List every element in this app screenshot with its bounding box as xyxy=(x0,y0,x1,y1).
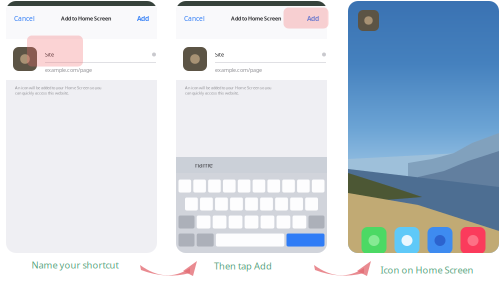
button[interactable]: Messages xyxy=(394,227,419,254)
button[interactable]: Web clip app icon xyxy=(358,10,379,31)
button[interactable]: Cancel xyxy=(12,12,37,25)
staticText: Icon on Home Screen xyxy=(380,264,473,276)
staticText: An icon will be added to your Home Scree… xyxy=(185,85,271,96)
staticText: Cancel xyxy=(14,14,35,23)
button[interactable]: Add xyxy=(135,12,151,25)
staticText: Site xyxy=(215,51,224,58)
button[interactable]: Add xyxy=(305,12,321,25)
button[interactable]: Phone xyxy=(361,227,386,254)
button[interactable]: Site xyxy=(215,47,326,62)
staticText: Site xyxy=(45,51,54,58)
button[interactable]: Site xyxy=(45,47,156,62)
button[interactable]: Safari xyxy=(427,227,452,254)
staticText: An icon will be added to your Home Scree… xyxy=(15,85,101,96)
button[interactable]: Cancel xyxy=(182,12,207,25)
staticText: Add xyxy=(137,14,149,23)
staticText: example.com/page xyxy=(215,66,262,74)
staticText: Add xyxy=(307,14,319,23)
staticText: Cancel xyxy=(184,14,205,23)
staticText: example.com/page xyxy=(45,66,92,74)
staticText: Add to Home Screen xyxy=(61,15,111,22)
staticText: Name your shortcut xyxy=(31,259,118,271)
staticText: Add to Home Screen xyxy=(231,15,281,22)
button[interactable]: Music xyxy=(460,227,485,254)
staticText: name xyxy=(195,161,213,169)
staticText: Then tap Add xyxy=(214,260,272,272)
